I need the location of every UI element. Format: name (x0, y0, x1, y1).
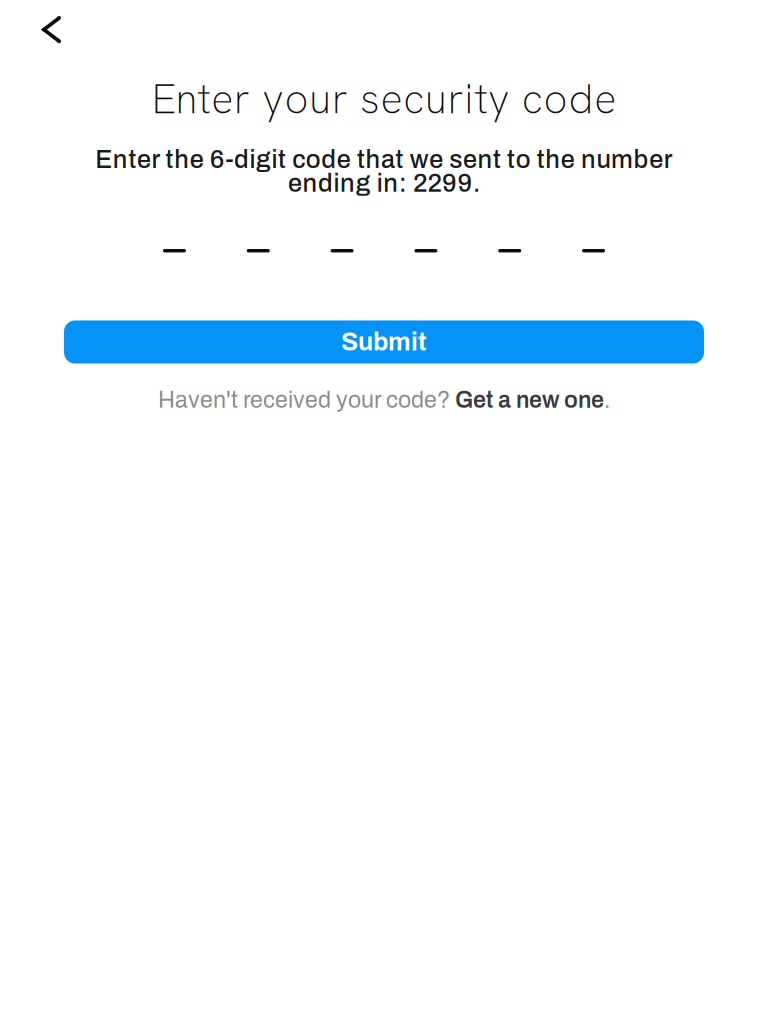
button[interactable]: Get a new one (455, 387, 604, 413)
button[interactable]: Back (0, 7, 75, 52)
button[interactable]: Security code digit 2 (247, 249, 270, 252)
button[interactable]: Security code digit 1 (163, 249, 186, 252)
button[interactable]: Security code digit 5 (498, 249, 521, 252)
staticText: Submit (341, 328, 427, 356)
staticText: ending in: 2299. (288, 169, 480, 197)
button[interactable]: Security code digit 6 (582, 249, 605, 252)
staticText: Get a new one (455, 387, 604, 413)
button[interactable]: Security code digit 4 (414, 249, 437, 252)
staticText: Haven't received your code? (158, 387, 455, 413)
staticText: . (604, 387, 610, 413)
button[interactable]: Security code digit 3 (331, 249, 354, 252)
staticText: Enter your security code (152, 72, 616, 126)
button[interactable]: Submit (64, 320, 704, 363)
staticText: Enter the 6-digit code that we sent to t… (95, 146, 673, 173)
